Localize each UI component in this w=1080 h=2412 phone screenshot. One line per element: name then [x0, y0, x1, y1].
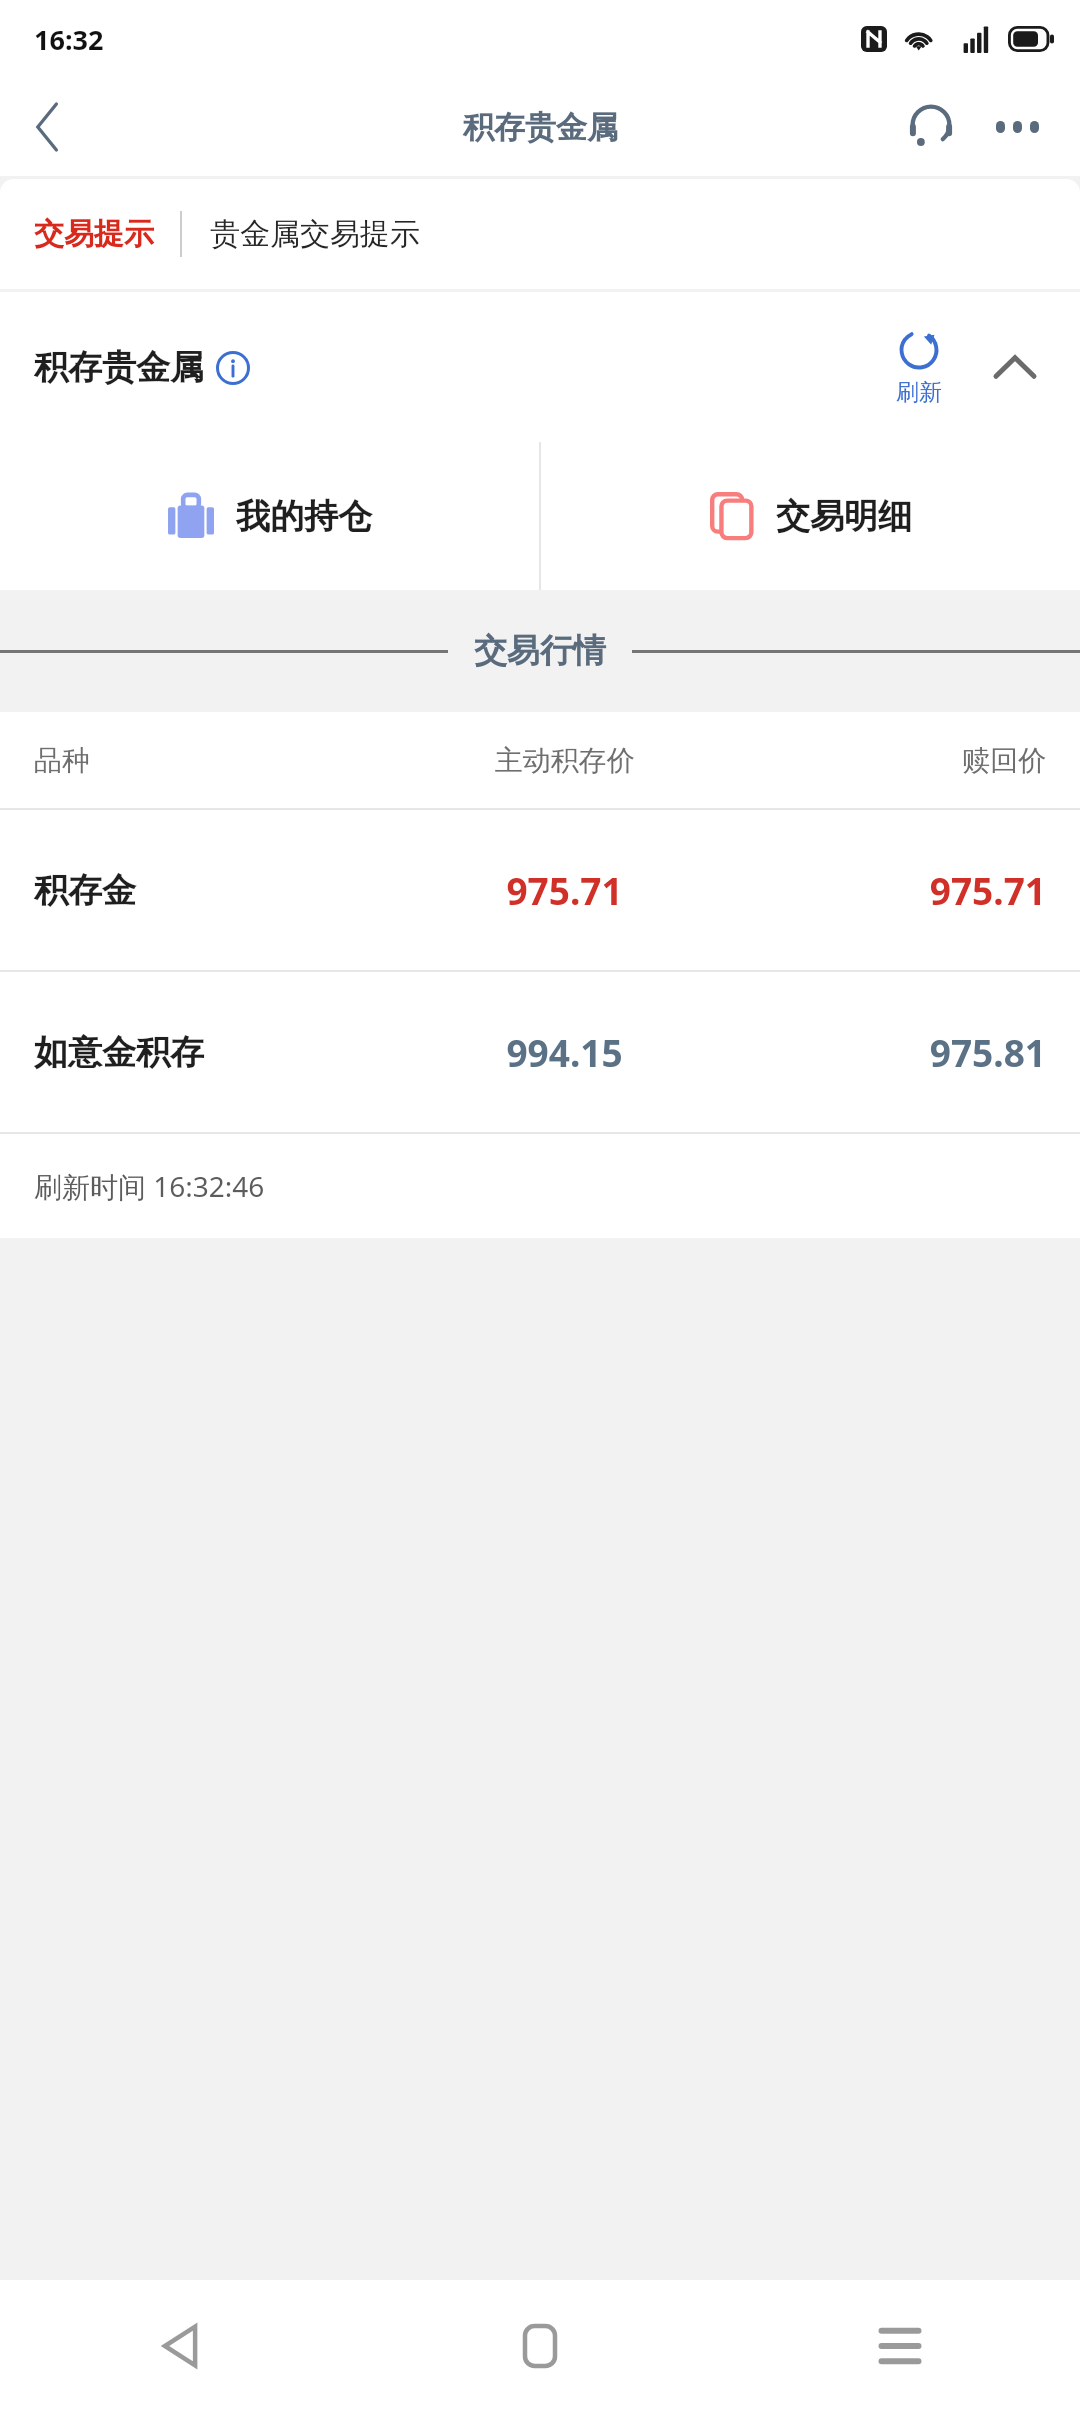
staticText: 刷新	[896, 378, 942, 407]
button[interactable]: 积存金	[0, 810, 1080, 970]
button[interactable]: Back	[0, 78, 96, 176]
staticText: 994.15	[388, 1027, 741, 1077]
staticText: 积存金	[34, 869, 388, 912]
button[interactable]: 如意金积存	[0, 972, 1080, 1132]
button[interactable]: Back	[0, 2280, 360, 2412]
staticText: 16:32	[34, 21, 104, 58]
staticText: 品种	[34, 743, 388, 778]
staticText: 积存贵金属	[463, 108, 618, 147]
button[interactable]: Customer service	[888, 78, 974, 176]
button[interactable]: 交易提示	[0, 179, 1080, 289]
button[interactable]: Home	[360, 2280, 720, 2412]
button[interactable]: 刷新	[896, 327, 942, 407]
button[interactable]: 交易明细	[541, 442, 1080, 590]
staticText: 交易明细	[776, 495, 912, 538]
button[interactable]: 积存贵金属	[34, 346, 250, 389]
button[interactable]: Recent apps	[720, 2280, 1080, 2412]
staticText: 贵金属交易提示	[210, 215, 420, 253]
staticText: 我的持仓	[236, 495, 372, 538]
staticText: 积存贵金属	[34, 346, 204, 389]
staticText: 975.71	[741, 865, 1046, 915]
button[interactable]: Collapse	[980, 322, 1050, 412]
staticText: 赎回价	[741, 743, 1046, 778]
staticText: 主动积存价	[388, 743, 741, 778]
staticText: 交易行情	[474, 630, 606, 672]
staticText: 刷新时间 16:32:46	[34, 1167, 265, 1205]
button[interactable]: More options	[974, 78, 1060, 176]
staticText: 975.71	[388, 865, 741, 915]
button[interactable]: 我的持仓	[0, 442, 539, 590]
staticText: 如意金积存	[34, 1031, 388, 1074]
staticText: 交易提示	[34, 215, 154, 253]
staticText: 975.81	[741, 1027, 1046, 1077]
